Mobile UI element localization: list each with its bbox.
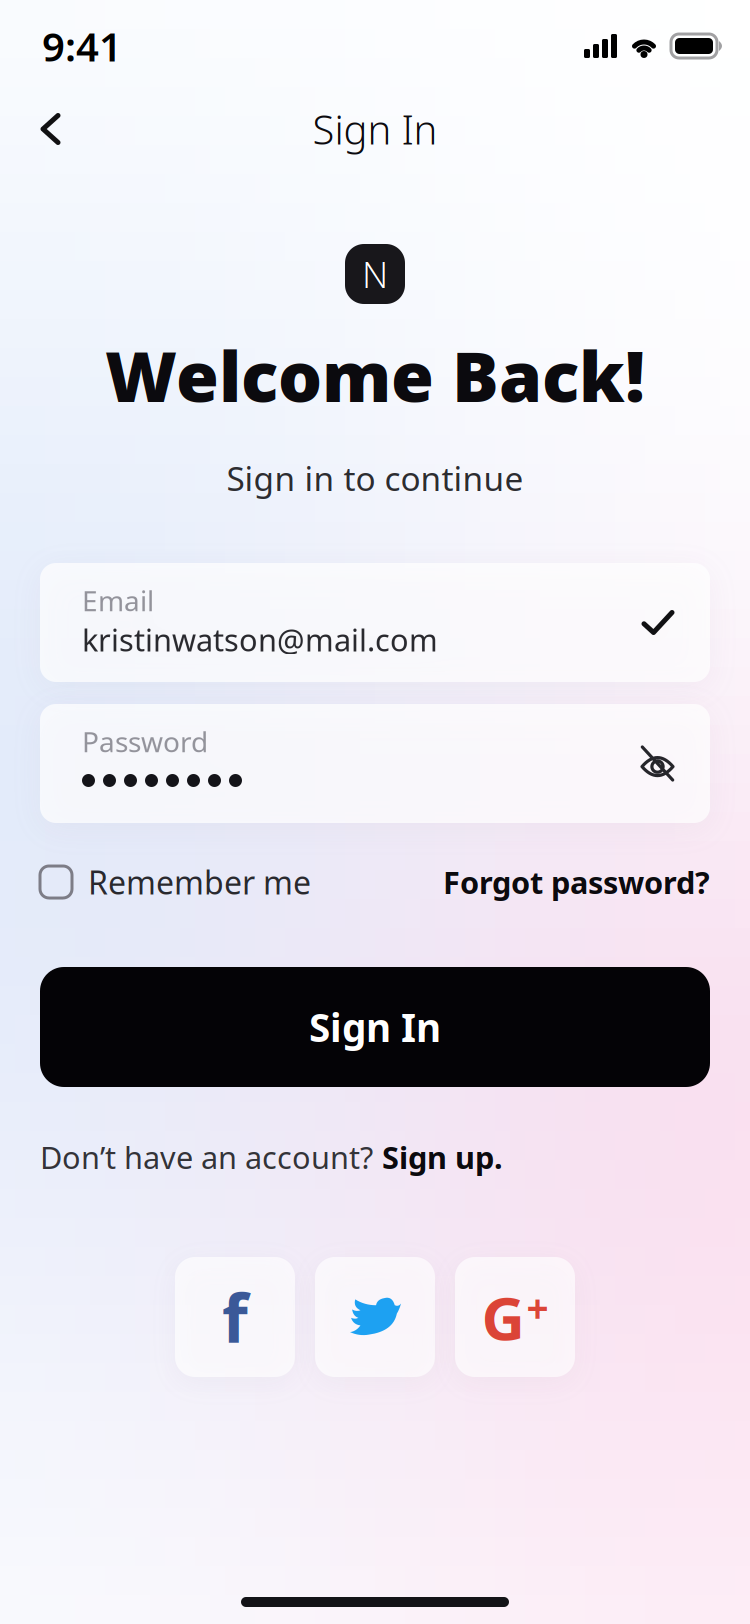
staticText: 9:41 <box>42 19 122 72</box>
staticText: Remember me <box>88 861 311 903</box>
button[interactable]: Sign In <box>40 967 710 1087</box>
staticText: Welcome Back! <box>105 329 645 421</box>
button[interactable]: Forgot password? <box>443 862 710 902</box>
staticText: Forgot password? <box>443 862 710 902</box>
staticText: Don’t have an account? <box>40 1137 373 1177</box>
button[interactable]: Back <box>0 96 61 161</box>
button[interactable]: Sign up. <box>382 1137 503 1177</box>
staticText: N <box>362 250 388 298</box>
button[interactable]: Show password <box>641 748 674 779</box>
staticText: Sign in to continue <box>226 456 523 500</box>
button[interactable]: Sign in with Twitter <box>315 1257 435 1377</box>
staticText: kristinwatson@mail.com <box>82 619 438 660</box>
staticText: f <box>222 1273 248 1361</box>
button[interactable]: Sign in with Google <box>455 1257 575 1377</box>
staticText: Email <box>82 582 154 619</box>
button[interactable]: Remember me <box>40 861 311 903</box>
staticText: Sign up. <box>382 1137 503 1177</box>
staticText: Password <box>82 723 208 760</box>
staticText: + <box>526 1282 548 1333</box>
button[interactable]: Sign in with Facebook <box>175 1257 295 1377</box>
staticText: Sign In <box>312 102 437 155</box>
staticText: Sign In <box>309 1001 441 1053</box>
staticText: G <box>481 1277 524 1357</box>
